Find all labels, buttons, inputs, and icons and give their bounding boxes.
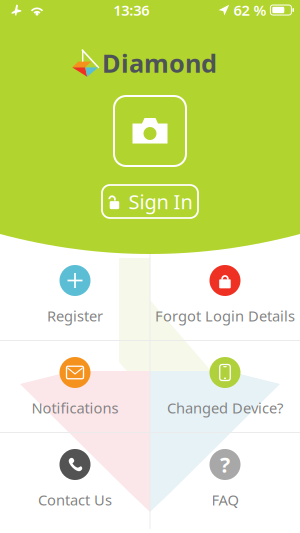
staticText: 62 % [233, 0, 266, 20]
button[interactable]: Register [0, 249, 150, 340]
staticText: Forgot Login Details [155, 306, 295, 325]
button[interactable]: Sign In [102, 185, 198, 218]
staticText: FAQ [211, 490, 238, 509]
staticText: ? [220, 450, 230, 479]
button[interactable]: ? [150, 433, 300, 524]
staticText: Sign In [128, 188, 192, 215]
staticText: Contact Us [38, 490, 112, 509]
staticText: Notifications [31, 398, 118, 417]
staticText: Changed Device? [167, 398, 283, 417]
button[interactable]: Contact Us [0, 433, 150, 524]
staticText: Diamond [102, 46, 217, 80]
button[interactable]: Notifications [0, 341, 150, 432]
staticText: 13:36 [113, 0, 149, 20]
button[interactable]: Changed Device? [150, 341, 300, 432]
button[interactable]: Forgot Login Details [150, 249, 300, 340]
staticText: Register [47, 306, 103, 325]
